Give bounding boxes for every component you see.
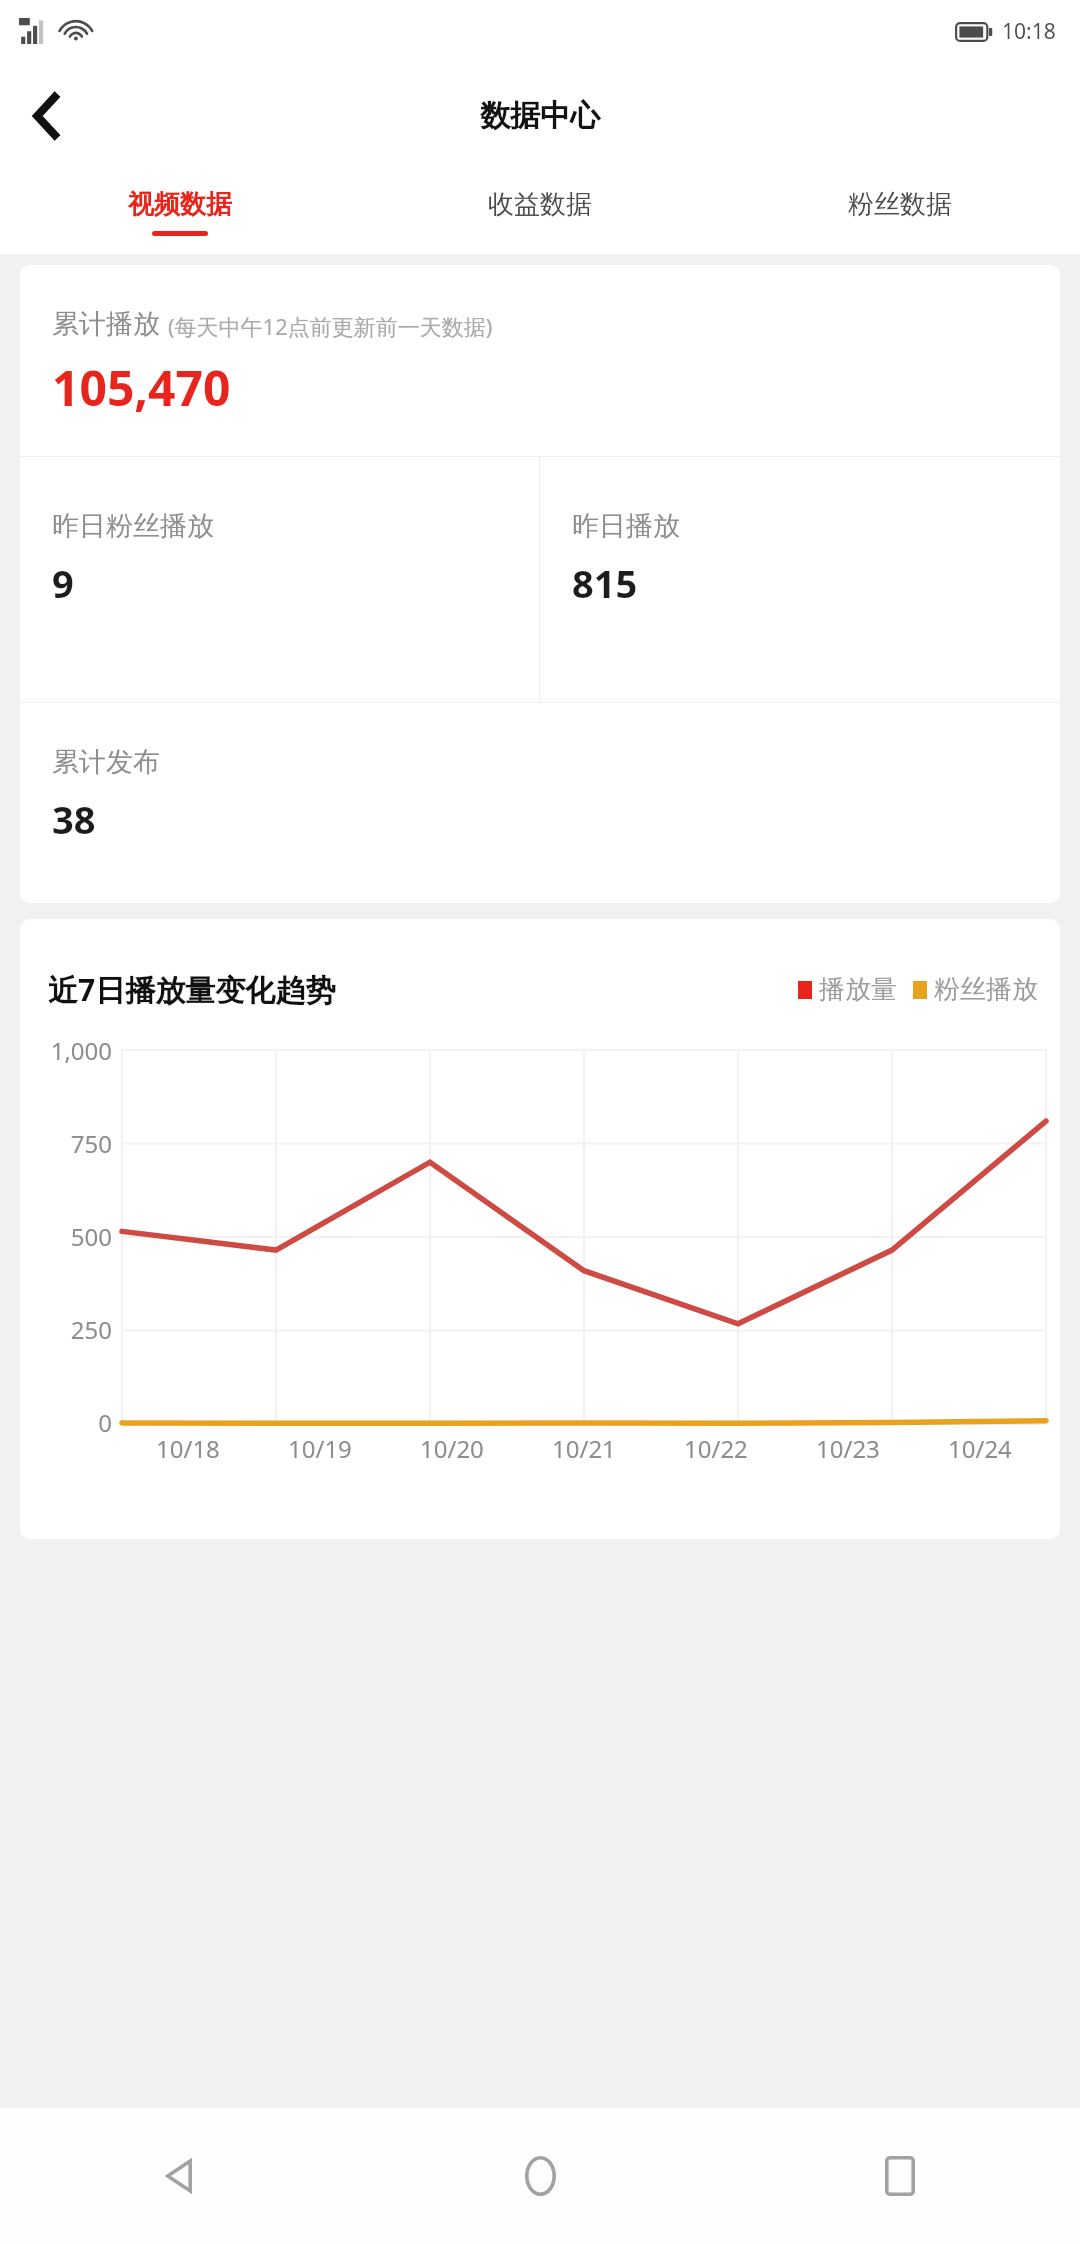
staticText: (每天中午12点前更新前一天数据) — [168, 311, 493, 341]
button[interactable]: 收益数据 — [360, 170, 720, 254]
button[interactable]: 播放量 — [798, 973, 897, 1006]
button[interactable]: Recents — [720, 2108, 1080, 2244]
staticText: 9 — [52, 557, 74, 609]
staticText: 38 — [52, 793, 96, 845]
staticText: 10/18 — [156, 1432, 220, 1465]
staticText: 500 — [34, 1220, 112, 1253]
button[interactable]: 昨日播放 — [540, 457, 1060, 702]
staticText: 0 — [34, 1406, 112, 1439]
staticText: 250 — [34, 1313, 112, 1346]
staticText: 105,470 — [52, 355, 231, 420]
button[interactable]: 粉丝数据 — [720, 170, 1080, 254]
staticText: 10/23 — [816, 1432, 880, 1465]
staticText: 10/20 — [420, 1432, 484, 1465]
staticText: 10/22 — [684, 1432, 748, 1465]
staticText: 750 — [34, 1127, 112, 1160]
staticText: 播放量 — [819, 973, 897, 1006]
staticText: 815 — [572, 557, 638, 609]
staticText: 视频数据 — [128, 188, 232, 221]
staticText: 近7日播放量变化趋势 — [48, 969, 336, 1010]
button[interactable]: Back — [14, 84, 78, 148]
button[interactable]: 昨日粉丝播放 — [20, 457, 539, 702]
staticText: 数据中心 — [480, 97, 600, 135]
staticText: 10/21 — [552, 1432, 616, 1465]
staticText: 累计发布 — [52, 745, 160, 779]
button[interactable]: Home — [360, 2108, 720, 2244]
staticText: 收益数据 — [488, 188, 592, 221]
staticText: 累计播放 — [52, 307, 160, 341]
staticText: 粉丝数据 — [848, 188, 952, 221]
button[interactable]: 视频数据 — [0, 170, 360, 254]
staticText: 1,000 — [34, 1034, 112, 1067]
staticText: 昨日粉丝播放 — [52, 509, 214, 543]
button[interactable]: 粉丝播放 — [913, 973, 1038, 1006]
staticText: 昨日播放 — [572, 509, 680, 543]
staticText: 粉丝播放 — [934, 973, 1038, 1006]
staticText: 10:18 — [1002, 17, 1056, 46]
staticText: 10/19 — [288, 1432, 352, 1465]
staticText: 10/24 — [948, 1432, 1012, 1465]
button[interactable]: Back — [0, 2108, 360, 2244]
